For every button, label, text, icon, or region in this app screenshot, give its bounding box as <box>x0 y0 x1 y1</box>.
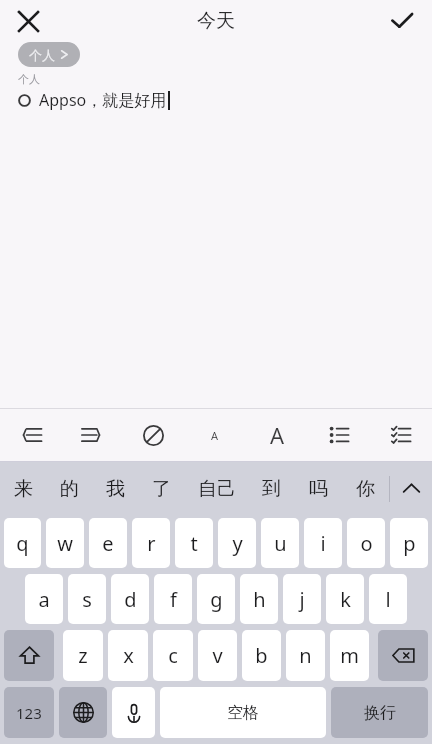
button[interactable]: 来 <box>0 462 46 515</box>
staticText: 的 <box>60 477 79 501</box>
staticText: d <box>124 586 137 613</box>
button[interactable]: r <box>132 518 170 568</box>
button[interactable]: i <box>304 518 342 568</box>
button[interactable]: f <box>154 574 192 624</box>
button[interactable]: Switch keyboard <box>59 687 107 738</box>
staticText: 个人 <box>29 47 55 63</box>
staticText: A <box>211 428 219 443</box>
button[interactable]: b <box>242 630 281 681</box>
staticText: y <box>232 530 243 557</box>
button[interactable]: w <box>46 518 84 568</box>
button[interactable]: 我 <box>92 462 138 515</box>
button[interactable]: 到 <box>248 462 295 515</box>
button[interactable]: Voice input <box>112 687 155 738</box>
staticText: n <box>299 642 312 669</box>
button[interactable]: k <box>326 574 364 624</box>
staticText: i <box>320 530 326 557</box>
staticText: f <box>170 586 177 613</box>
button[interactable]: t <box>175 518 213 568</box>
button[interactable]: v <box>198 630 237 681</box>
button[interactable]: m <box>330 630 369 681</box>
staticText: o <box>360 530 373 557</box>
button[interactable]: h <box>240 574 278 624</box>
button[interactable]: 你 <box>342 462 389 515</box>
button[interactable]: Checklist <box>370 409 432 461</box>
staticText: x <box>123 642 134 669</box>
button[interactable]: p <box>390 518 428 568</box>
staticText: q <box>16 530 29 557</box>
button[interactable]: Shift <box>4 630 54 681</box>
button[interactable]: e <box>89 518 127 568</box>
button[interactable]: Expand suggestions <box>390 462 432 515</box>
button[interactable]: y <box>218 518 256 568</box>
button[interactable]: x <box>108 630 148 681</box>
button[interactable]: c <box>153 630 193 681</box>
staticText: r <box>147 530 156 557</box>
button[interactable]: o <box>347 518 385 568</box>
button[interactable]: 换行 <box>331 687 428 738</box>
button[interactable]: j <box>283 574 321 624</box>
staticText: u <box>274 530 287 557</box>
button[interactable]: 了 <box>138 462 185 515</box>
staticText: p <box>403 530 416 557</box>
staticText: g <box>210 586 223 613</box>
button[interactable]: 吗 <box>295 462 342 515</box>
staticText: w <box>57 530 73 557</box>
staticText: 了 <box>152 477 171 501</box>
button[interactable]: s <box>68 574 106 624</box>
staticText: k <box>340 586 351 613</box>
button[interactable]: Indent <box>61 409 122 461</box>
button[interactable]: 的 <box>46 462 92 515</box>
staticText: 空格 <box>227 703 259 723</box>
button[interactable]: Small text <box>184 409 246 461</box>
button[interactable]: Bulleted list <box>308 409 370 461</box>
button[interactable]: 个人 <box>18 42 80 67</box>
staticText: 吗 <box>309 477 328 501</box>
staticText: 到 <box>262 477 281 501</box>
staticText: 123 <box>16 703 42 723</box>
staticText: m <box>340 642 359 669</box>
staticText: 来 <box>14 477 33 501</box>
staticText: j <box>299 586 305 613</box>
button[interactable]: Done <box>380 0 424 42</box>
staticText: A <box>270 420 285 450</box>
button[interactable]: l <box>369 574 407 624</box>
staticText: c <box>168 642 178 669</box>
button[interactable]: 自己 <box>185 462 248 515</box>
button[interactable]: z <box>63 630 103 681</box>
staticText: s <box>82 586 92 613</box>
button[interactable]: 123 <box>4 687 54 738</box>
staticText: z <box>78 642 88 669</box>
button[interactable]: u <box>261 518 299 568</box>
staticText: 自己 <box>198 477 236 501</box>
staticText: e <box>102 530 114 557</box>
staticText: h <box>253 586 266 613</box>
button[interactable]: 空格 <box>160 687 326 738</box>
staticText: b <box>255 642 268 669</box>
staticText: 个人 <box>18 72 40 86</box>
staticText: 我 <box>106 477 125 501</box>
button[interactable]: g <box>197 574 235 624</box>
staticText: l <box>385 586 391 613</box>
staticText: v <box>212 642 223 669</box>
staticText: a <box>38 586 50 613</box>
button[interactable]: Backspace <box>378 630 428 681</box>
button[interactable]: q <box>4 518 41 568</box>
button[interactable]: Clear formatting <box>122 409 184 461</box>
button[interactable]: d <box>111 574 149 624</box>
staticText: 今天 <box>197 9 235 33</box>
button[interactable]: Outdent <box>0 409 61 461</box>
button[interactable]: a <box>25 574 63 624</box>
button[interactable]: n <box>286 630 325 681</box>
button[interactable]: Close <box>6 0 50 42</box>
staticText: t <box>190 530 198 557</box>
staticText: Appso，就是好用 <box>39 89 167 111</box>
button[interactable]: Large text <box>246 409 308 461</box>
staticText: 你 <box>356 477 375 501</box>
staticText: 换行 <box>364 703 396 723</box>
